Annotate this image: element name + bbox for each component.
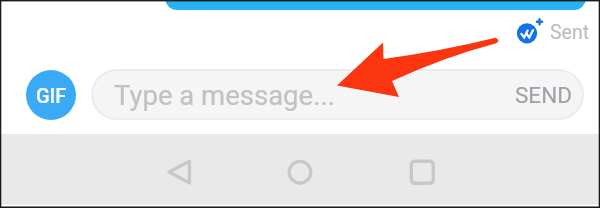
other: Delivery status — [512, 14, 544, 46]
staticText: GIF — [36, 84, 67, 107]
button[interactable]: Home — [282, 154, 318, 190]
button[interactable]: Back — [161, 154, 197, 190]
button[interactable]: Type a message... — [91, 69, 584, 120]
staticText: Type a message... — [114, 79, 335, 111]
button[interactable]: Recent apps — [405, 154, 441, 190]
button[interactable]: GIF — [26, 70, 76, 120]
staticText: SEND — [515, 82, 572, 108]
staticText: Sent — [550, 21, 590, 44]
button[interactable]: SEND — [504, 74, 583, 115]
